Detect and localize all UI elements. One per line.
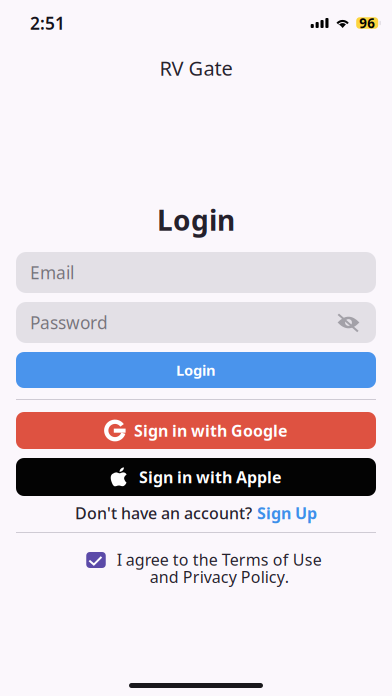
staticText: RV Gate: [159, 55, 232, 81]
button[interactable]: Sign in with Apple: [0, 458, 392, 496]
staticText: Password: [30, 311, 108, 334]
staticText: Sign Up: [257, 502, 317, 524]
staticText: Login: [176, 360, 216, 380]
staticText: Sign in with Apple: [139, 466, 282, 488]
button[interactable]: Show password: [337, 301, 376, 343]
button[interactable]: Sign Up: [257, 502, 317, 524]
staticText: 2:51: [30, 11, 65, 34]
staticText: Don't have an account?: [75, 502, 252, 524]
staticText: 96: [359, 14, 375, 32]
staticText: and Privacy Policy.: [150, 566, 289, 587]
button[interactable]: Login: [0, 352, 392, 388]
button[interactable]: Agree to the Terms of Use and Privacy Po…: [86, 549, 106, 568]
staticText: Email: [30, 261, 74, 284]
staticText: I agree to the Terms of Use: [117, 549, 322, 570]
staticText: Login: [157, 201, 235, 239]
staticText: Sign in with Google: [134, 420, 288, 441]
button[interactable]: Sign in with Google: [0, 412, 392, 449]
